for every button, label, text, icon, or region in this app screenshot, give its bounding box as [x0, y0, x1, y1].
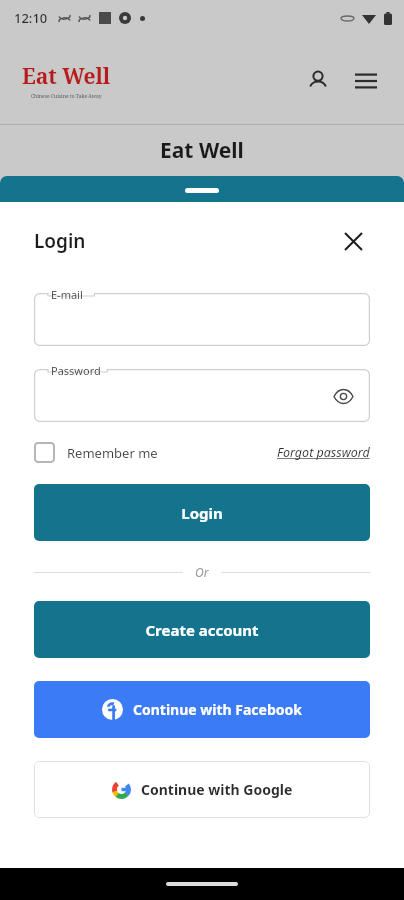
- staticText: Login: [181, 503, 223, 523]
- staticText: 12:10: [14, 9, 48, 27]
- button[interactable]: Account: [298, 61, 338, 101]
- button[interactable]: Create account: [34, 601, 370, 658]
- button[interactable]: Login: [34, 484, 370, 541]
- button[interactable]: Show password: [326, 379, 360, 413]
- staticText: Or: [195, 564, 209, 580]
- staticText: Create account: [145, 620, 259, 640]
- staticText: E-mail: [51, 287, 83, 302]
- staticText: Chinese Cuisine to Take Away: [31, 93, 102, 100]
- staticText: Password: [51, 363, 101, 378]
- button[interactable]: Menu: [346, 61, 386, 101]
- staticText: Forgot password: [277, 444, 370, 461]
- button[interactable]: Continue with Google: [34, 761, 370, 818]
- staticText: Eat Well: [160, 136, 244, 165]
- staticText: Continue with Google: [141, 780, 293, 799]
- staticText: Eat Well: [22, 62, 111, 91]
- staticText: Remember me: [67, 444, 158, 462]
- button[interactable]: Close: [336, 224, 370, 258]
- button[interactable]: Continue with Facebook: [34, 681, 370, 738]
- staticText: Login: [34, 228, 86, 254]
- button[interactable]: Forgot password: [277, 444, 370, 461]
- button[interactable]: Remember me: [34, 442, 158, 463]
- staticText: Continue with Facebook: [133, 700, 302, 719]
